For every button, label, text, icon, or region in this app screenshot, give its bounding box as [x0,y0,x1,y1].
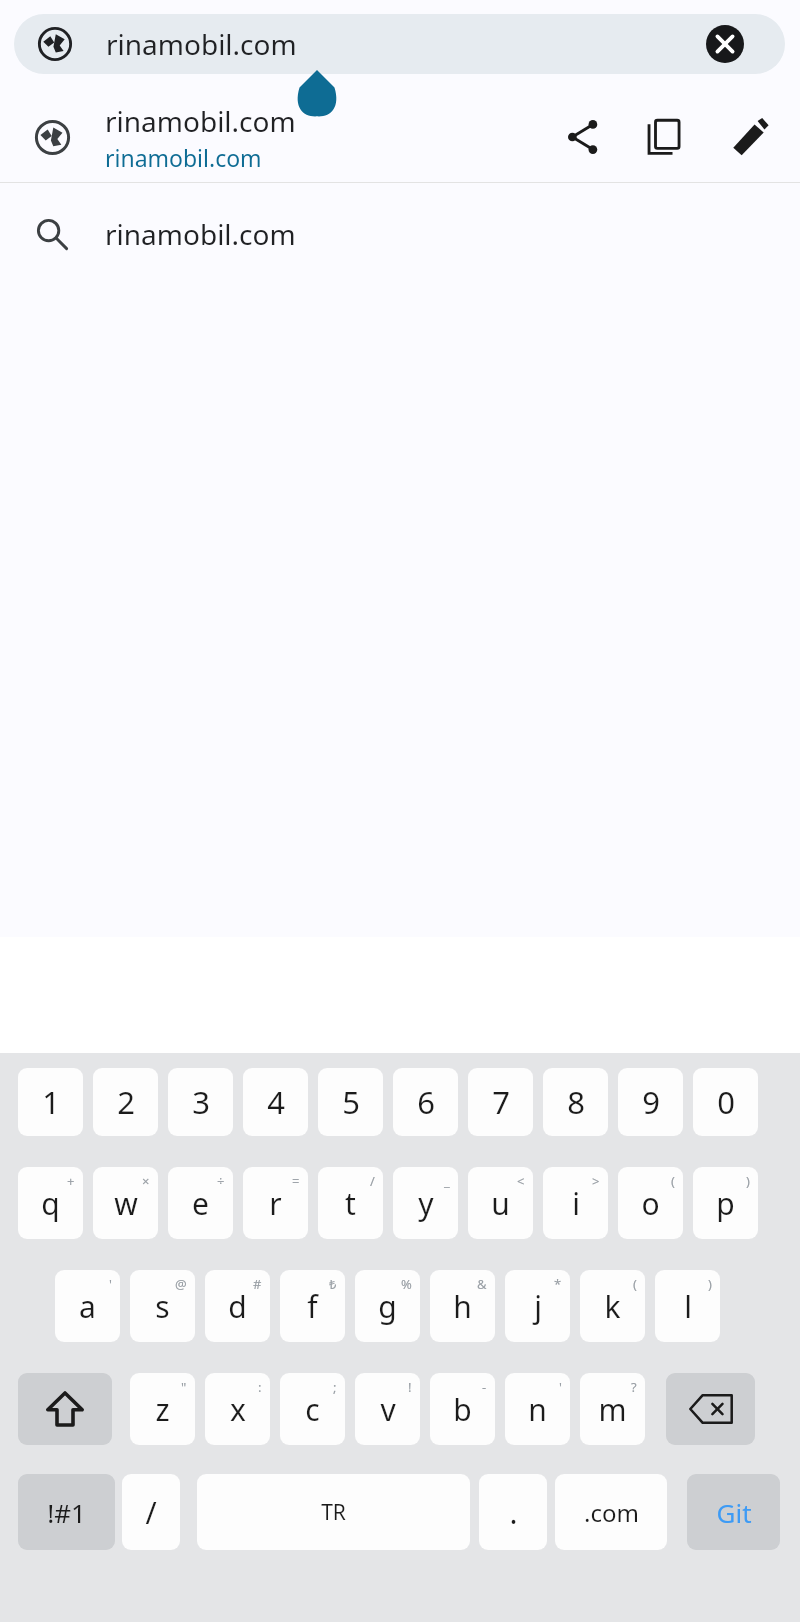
staticText: z [155,1389,170,1430]
button[interactable]: . [479,1474,547,1550]
staticText: : [258,1378,262,1396]
button[interactable]: Clear [706,25,744,63]
button[interactable]: e [168,1167,233,1239]
button[interactable]: rinamobil.com [14,14,785,74]
button[interactable]: Share [559,113,607,161]
button[interactable]: v [355,1373,420,1445]
button[interactable]: l [655,1270,720,1342]
button[interactable]: s [130,1270,195,1342]
staticText: ' [559,1378,562,1396]
button[interactable]: 7 [468,1068,533,1136]
button[interactable]: Edit [726,113,774,161]
staticText: * [554,1275,562,1293]
button[interactable]: 6 [393,1068,458,1136]
staticText: x [230,1389,246,1430]
staticText: = [292,1172,300,1190]
staticText: j [534,1286,542,1327]
button[interactable]: Backspace [666,1373,755,1445]
button[interactable]: w [93,1167,158,1239]
staticText: . [509,1492,518,1533]
button[interactable]: n [505,1373,570,1445]
staticText: c [305,1389,320,1430]
staticText: rinamobil.com [105,215,296,253]
staticText: rinamobil.com [105,102,296,140]
staticText: t [345,1183,356,1224]
staticText: w [114,1183,138,1224]
button[interactable]: b [430,1373,495,1445]
button[interactable]: r [243,1167,308,1239]
button[interactable]: 8 [543,1068,608,1136]
button[interactable]: rinamobil.com [0,92,800,182]
staticText: u [491,1183,510,1224]
staticText: 4 [267,1081,285,1123]
button[interactable]: 9 [618,1068,683,1136]
button[interactable]: u [468,1167,533,1239]
button[interactable]: Shift [18,1373,112,1445]
staticText: / [370,1172,375,1190]
button[interactable]: m [580,1373,645,1445]
button[interactable]: rinamobil.com [0,183,800,285]
staticText: > [592,1172,600,1190]
button[interactable]: t [318,1167,383,1239]
staticText: ₺ [329,1275,337,1293]
button[interactable]: 5 [318,1068,383,1136]
button[interactable]: Copy [641,113,689,161]
button[interactable]: 3 [168,1068,233,1136]
staticText: ( [671,1172,675,1190]
button[interactable]: h [430,1270,495,1342]
button[interactable]: .com [555,1474,667,1550]
staticText: q [41,1183,60,1224]
button[interactable]: j [505,1270,570,1342]
button[interactable]: i [543,1167,608,1239]
staticText: h [453,1286,472,1327]
button[interactable]: 4 [243,1068,308,1136]
staticText: 6 [417,1081,435,1123]
staticText: p [716,1183,735,1224]
staticText: ? [631,1378,637,1396]
staticText: ! [408,1378,412,1396]
staticText: × [142,1172,150,1190]
staticText: ; [333,1378,337,1396]
button[interactable]: y [393,1167,458,1239]
staticText: e [192,1183,209,1224]
staticText: 8 [567,1081,585,1123]
button[interactable]: g [355,1270,420,1342]
button[interactable]: d [205,1270,270,1342]
button[interactable]: 2 [93,1068,158,1136]
button[interactable]: Git [687,1474,780,1550]
staticText: o [641,1183,660,1224]
button[interactable]: !#1 [18,1474,115,1550]
staticText: k [604,1286,621,1327]
staticText: l [684,1286,692,1327]
staticText: & [477,1275,487,1293]
staticText: i [572,1183,580,1224]
staticText: 2 [117,1081,135,1123]
staticText: m [598,1389,627,1430]
staticText: @ [175,1275,187,1293]
button[interactable]: o [618,1167,683,1239]
staticText: _ [444,1172,450,1190]
staticText: n [528,1389,547,1430]
button[interactable]: q [18,1167,83,1239]
staticText: y [418,1183,434,1224]
button[interactable]: z [130,1373,195,1445]
staticText: " [181,1378,187,1396]
staticText: % [401,1275,412,1293]
button[interactable]: k [580,1270,645,1342]
button[interactable]: 1 [18,1068,83,1136]
button[interactable]: / [122,1474,180,1550]
staticText: TR [321,1498,346,1527]
button[interactable]: p [693,1167,758,1239]
button[interactable]: 0 [693,1068,758,1136]
button[interactable]: a [55,1270,120,1342]
staticText: f [307,1286,318,1327]
staticText: ( [633,1275,637,1293]
staticText: r [269,1183,282,1224]
staticText: d [228,1286,247,1327]
button[interactable]: TR [197,1474,470,1550]
button[interactable]: c [280,1373,345,1445]
staticText: !#1 [47,1495,86,1530]
button[interactable]: f [280,1270,345,1342]
staticText: v [380,1389,396,1430]
button[interactable]: x [205,1373,270,1445]
